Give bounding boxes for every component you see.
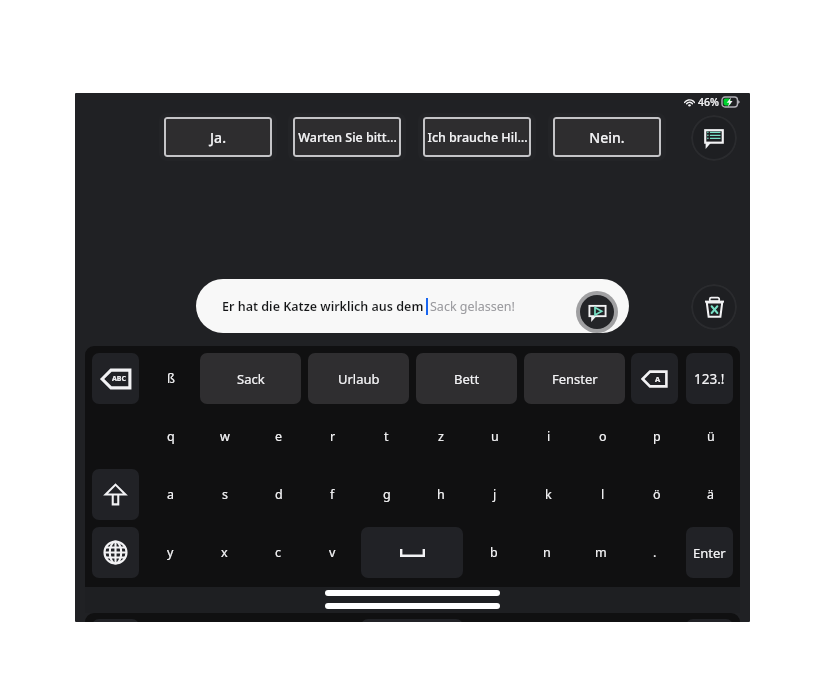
button[interactable]: Clear text [691,284,737,330]
staticText: v [329,544,336,561]
staticText: b [490,544,498,561]
button[interactable]: Ich brauche Hil… [423,117,531,157]
button[interactable]: l [579,469,626,520]
staticText: o [599,428,607,445]
staticText: s [222,486,228,503]
button[interactable]: r [309,411,356,462]
staticText: Enter [693,544,726,562]
staticText: f [330,486,335,503]
staticText: Ich brauche Hil… [427,129,528,146]
staticText: . [653,544,657,561]
button[interactable]: w [201,411,248,462]
button[interactable]: . [631,527,678,578]
staticText: Bett [454,370,480,388]
button[interactable]: Delete word [92,353,139,404]
staticText: e [275,428,283,445]
staticText: j [493,486,497,503]
button[interactable]: Change language [92,527,139,578]
staticText: x [221,544,228,561]
button[interactable]: x [201,527,248,578]
button[interactable]: ß [147,353,194,404]
button[interactable]: Urlaub [308,353,409,404]
staticText: Fenster [552,370,598,388]
button[interactable]: b [470,527,517,578]
staticText: ü [707,428,715,445]
staticText: d [275,486,283,503]
button[interactable]: h [417,469,464,520]
button[interactable]: s [201,469,248,520]
staticText: p [653,428,661,445]
staticText: z [438,428,444,445]
staticText: q [167,428,175,445]
staticText: m [595,544,607,561]
staticText: Nein. [589,128,625,147]
button[interactable]: Enter [686,527,733,578]
button[interactable]: u [471,411,518,462]
button[interactable]: 123.! [686,353,733,404]
button[interactable]: Er hat die Katze wirklich aus dem [196,279,629,333]
button[interactable]: j [471,469,518,520]
button[interactable]: f [309,469,356,520]
button[interactable]: Speak [580,295,614,329]
staticText: A [655,374,661,384]
staticText: Sack [237,370,265,388]
button[interactable]: d [255,469,302,520]
button[interactable]: Sack [200,353,301,404]
button[interactable]: t [363,411,410,462]
button[interactable]: p [633,411,680,462]
button[interactable]: o [579,411,626,462]
button[interactable]: Resize keyboard [85,587,740,613]
button[interactable]: i [525,411,572,462]
staticText: i [547,428,551,445]
button[interactable]: z [417,411,464,462]
button[interactable]: Phrases [691,115,737,161]
staticText: c [275,544,282,561]
button[interactable]: q [147,411,194,462]
staticText: a [167,486,175,503]
staticText: g [383,486,391,503]
staticText: 46% [698,95,719,109]
button[interactable]: n [523,527,570,578]
button[interactable]: y [147,527,194,578]
button[interactable]: ü [687,411,734,462]
staticText: Ja. [210,128,226,147]
button[interactable]: c [255,527,302,578]
staticText: Sack gelassen! [430,298,515,315]
staticText: k [545,486,552,503]
button[interactable]: Fenster [524,353,625,404]
staticText: Er hat die Katze wirklich aus dem [222,298,424,315]
staticText: w [220,428,230,445]
button[interactable]: Nein. [553,117,661,157]
staticText: u [491,428,499,445]
button[interactable]: m [577,527,624,578]
staticText: t [384,428,389,445]
staticText: r [330,428,336,445]
staticText: ä [707,486,715,503]
staticText: Urlaub [338,370,380,388]
staticText: ABC [112,374,126,384]
staticText: h [437,486,445,503]
button[interactable]: Backspace [631,353,678,404]
button[interactable]: Warten Sie bitt… [293,117,401,157]
staticText: Warten Sie bitt… [298,129,397,146]
button[interactable]: ä [687,469,734,520]
button[interactable]: Ja. [164,117,272,157]
staticText: 123.! [694,370,725,388]
button[interactable]: ö [633,469,680,520]
button[interactable]: e [255,411,302,462]
staticText: y [167,544,174,561]
button[interactable]: Space [361,527,463,578]
button[interactable]: Shift [92,469,139,520]
staticText: ö [653,486,661,503]
button[interactable]: v [309,527,356,578]
button[interactable]: k [525,469,572,520]
button[interactable]: g [363,469,410,520]
button[interactable]: Bett [416,353,517,404]
staticText: n [543,544,551,561]
staticText: l [601,486,605,503]
staticText: ß [167,370,175,387]
button[interactable]: a [147,469,194,520]
